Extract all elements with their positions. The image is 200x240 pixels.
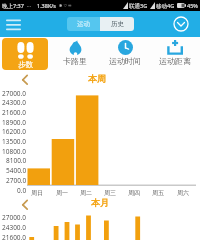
staticText: ✱ ♡ ♾ [59, 3, 72, 8]
staticText: 21600.0 [2, 108, 27, 117]
button[interactable] [173, 16, 189, 32]
button[interactable]: 卡路里 [50, 37, 100, 70]
staticText: 8100.0 [6, 156, 27, 165]
staticText: 5400.0 [6, 166, 27, 175]
staticText: 周五 [152, 189, 164, 197]
button[interactable]: 运动距离 [150, 37, 200, 70]
staticText: 10800.0 [2, 147, 27, 156]
staticText: 1.38K/s [37, 2, 56, 9]
staticText: 24300.0 [2, 223, 27, 232]
button[interactable]: 运动时间 [100, 37, 150, 70]
staticText: 16200.0 [2, 127, 27, 136]
button[interactable] [6, 19, 21, 31]
button[interactable]: 运动 [67, 17, 100, 31]
staticText: 运动 [77, 20, 90, 28]
staticText: 周六 [177, 189, 189, 197]
button[interactable] [22, 200, 28, 210]
staticText: 本周 [88, 73, 106, 84]
staticText: 本月 [91, 197, 109, 208]
button[interactable]: 步数 [2, 38, 48, 70]
staticText: 18900.0 [2, 118, 27, 127]
staticText: 周四 [128, 189, 140, 197]
staticText: 周三 [104, 189, 116, 197]
staticText: 周日 [31, 189, 43, 197]
staticText: 2700.0 [6, 176, 27, 185]
staticText: 步数 [18, 60, 33, 69]
staticText: 联通3G [129, 2, 148, 10]
staticText: 晚上7:37 [2, 2, 24, 10]
staticText: 13500.0 [2, 137, 27, 146]
staticText: 27000.0 [2, 89, 27, 98]
button[interactable] [22, 75, 28, 85]
staticText: 45% [187, 2, 198, 9]
button[interactable]: 历史 [100, 17, 134, 31]
staticText: 24300.0 [2, 98, 27, 107]
staticText: 运动距离 [159, 56, 191, 66]
staticText: ... [27, 2, 32, 9]
staticText: 0.0 [17, 186, 27, 195]
staticText: 21600.0 [2, 233, 27, 240]
staticText: 移动4G [156, 2, 175, 10]
staticText: 周二 [80, 189, 92, 197]
staticText: 27000.0 [2, 213, 27, 222]
staticText: 历史 [111, 20, 124, 28]
staticText: 周一 [56, 189, 68, 197]
staticText: 卡路里 [63, 56, 87, 66]
staticText: 运动时间 [109, 56, 141, 66]
